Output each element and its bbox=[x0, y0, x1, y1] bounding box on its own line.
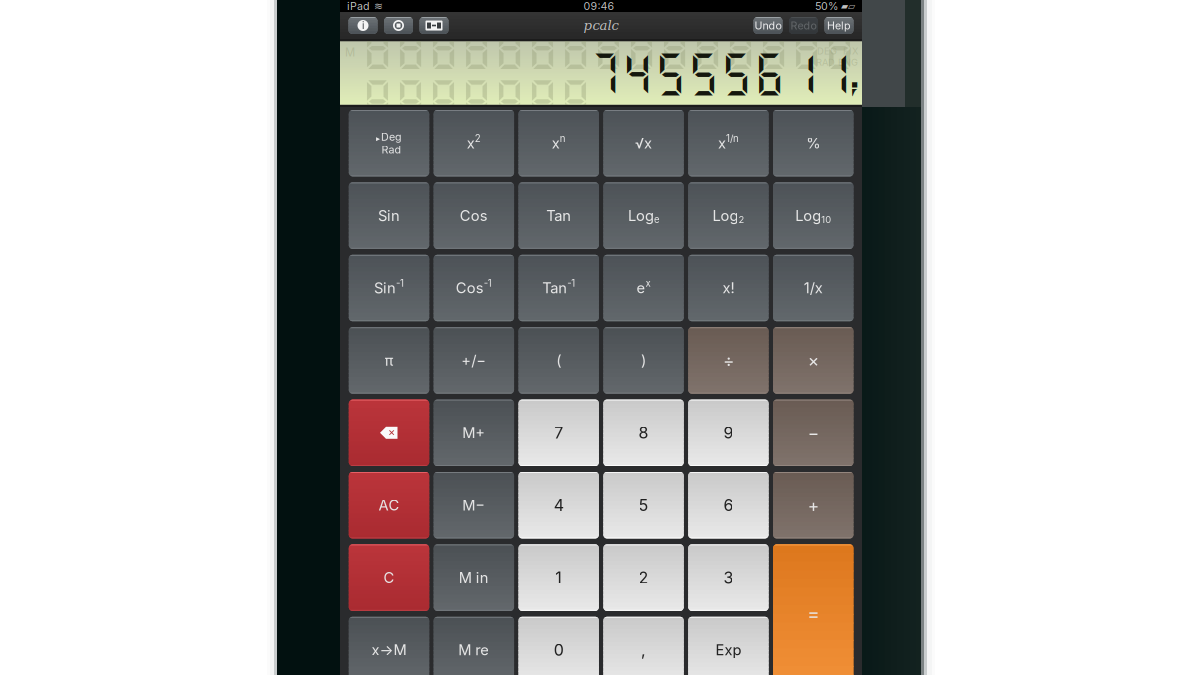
button[interactable]: AC bbox=[349, 472, 429, 538]
button[interactable]: 6 bbox=[688, 472, 769, 538]
button[interactable]: x bbox=[518, 110, 599, 176]
button[interactable]: Tan bbox=[518, 182, 599, 249]
button[interactable]: Log bbox=[603, 182, 684, 249]
button[interactable]: e bbox=[603, 255, 684, 321]
staticText: , bbox=[641, 640, 646, 660]
button[interactable]: 1/x bbox=[773, 255, 853, 321]
staticText: x! bbox=[722, 279, 734, 297]
staticText: 6 bbox=[723, 495, 733, 515]
button[interactable]: Help bbox=[824, 17, 853, 34]
button[interactable]: 7 bbox=[518, 400, 599, 466]
staticText: ✕ bbox=[388, 428, 395, 438]
staticText: RAD ENG bbox=[816, 57, 858, 68]
staticText: = bbox=[807, 602, 819, 625]
button[interactable]: x! bbox=[688, 255, 769, 321]
staticText: Log bbox=[795, 207, 821, 224]
button[interactable]: M re bbox=[434, 617, 514, 675]
staticText: 3 bbox=[723, 568, 733, 587]
button[interactable]: 2 bbox=[603, 544, 684, 611]
button[interactable]: 1 bbox=[518, 544, 599, 611]
button[interactable]: Delete bbox=[349, 400, 429, 466]
button[interactable]: Tan bbox=[518, 255, 599, 321]
staticText: Tan bbox=[546, 207, 571, 224]
staticText: 09:46 bbox=[583, 0, 614, 12]
staticText: 8888888888888888888888 bbox=[361, 20, 856, 126]
button[interactable]: M+ bbox=[434, 400, 514, 466]
button[interactable]: ( bbox=[518, 327, 599, 394]
staticText: Redo bbox=[790, 19, 816, 32]
staticText: 2 bbox=[738, 214, 744, 225]
button[interactable]: ÷ bbox=[688, 327, 769, 394]
button[interactable]: % bbox=[773, 110, 853, 176]
staticText: 1 bbox=[555, 568, 562, 587]
staticText: x bbox=[467, 134, 475, 152]
button[interactable]: π bbox=[349, 327, 429, 394]
button[interactable]: 9 bbox=[688, 400, 769, 466]
staticText: +/− bbox=[461, 351, 486, 369]
staticText: 2 bbox=[475, 132, 481, 144]
staticText: 50% bbox=[815, 0, 838, 12]
button[interactable]: Cos bbox=[434, 255, 514, 321]
button[interactable]: Exp bbox=[688, 617, 769, 675]
staticText: Exp bbox=[715, 641, 741, 659]
button[interactable]: − bbox=[773, 400, 853, 466]
button[interactable]: Undo bbox=[753, 17, 782, 34]
button[interactable]: Info bbox=[348, 17, 377, 34]
staticText: Cos bbox=[456, 279, 484, 297]
staticText: ≋ bbox=[374, 0, 383, 12]
button[interactable]: M in bbox=[434, 544, 514, 611]
button[interactable]: 0 bbox=[518, 617, 599, 675]
button[interactable]: x→M bbox=[349, 617, 429, 675]
staticText: 8 bbox=[639, 423, 649, 442]
staticText: AC bbox=[378, 496, 399, 514]
staticText: × bbox=[808, 350, 819, 371]
staticText: M− bbox=[462, 496, 485, 514]
button[interactable]: x bbox=[688, 110, 769, 176]
staticText: + bbox=[808, 495, 819, 516]
button[interactable]: + bbox=[773, 472, 853, 538]
staticText: 1/n bbox=[726, 132, 739, 144]
button[interactable]: Cos bbox=[434, 182, 514, 249]
button[interactable]: , bbox=[603, 617, 684, 675]
staticText: Undo bbox=[754, 19, 781, 32]
staticText: 7 bbox=[554, 423, 563, 442]
button[interactable]: M− bbox=[434, 472, 514, 538]
staticText: pcalc bbox=[583, 18, 618, 33]
staticText: ( bbox=[556, 351, 561, 369]
button[interactable]: √x bbox=[603, 110, 684, 176]
button[interactable]: = bbox=[773, 544, 853, 675]
staticText: 4 bbox=[554, 495, 564, 515]
staticText: M re bbox=[458, 641, 489, 659]
button[interactable]: 8 bbox=[603, 400, 684, 466]
staticText: Log bbox=[628, 207, 654, 224]
staticText: M in bbox=[459, 569, 489, 586]
button[interactable]: Conversions bbox=[419, 17, 448, 34]
staticText: M+ bbox=[462, 424, 485, 442]
button[interactable]: x bbox=[434, 110, 514, 176]
staticText: x→M bbox=[371, 641, 406, 659]
button[interactable]: Settings bbox=[384, 17, 413, 34]
button[interactable]: +/− bbox=[434, 327, 514, 394]
button[interactable]: Sin bbox=[349, 182, 429, 249]
staticText: − bbox=[808, 422, 819, 443]
staticText: x bbox=[552, 134, 560, 152]
staticText: -1 bbox=[567, 277, 575, 289]
button[interactable]: × bbox=[773, 327, 853, 394]
button[interactable]: ) bbox=[603, 327, 684, 394]
staticText: 1/x bbox=[804, 279, 823, 297]
button[interactable]: Log bbox=[773, 182, 853, 249]
button[interactable]: Sin bbox=[349, 255, 429, 321]
button[interactable]: 3 bbox=[688, 544, 769, 611]
button[interactable]: ▸ bbox=[349, 110, 429, 176]
button[interactable]: Log bbox=[688, 182, 769, 249]
staticText: e bbox=[654, 214, 659, 225]
staticText: -1 bbox=[484, 277, 492, 289]
staticText: Log bbox=[712, 207, 738, 224]
staticText: -1 bbox=[396, 277, 404, 289]
button[interactable]: 5 bbox=[603, 472, 684, 538]
button[interactable]: C bbox=[349, 544, 429, 611]
button[interactable]: 4 bbox=[518, 472, 599, 538]
button[interactable]: Redo bbox=[789, 17, 818, 34]
staticText: 74555611, bbox=[588, 46, 856, 100]
